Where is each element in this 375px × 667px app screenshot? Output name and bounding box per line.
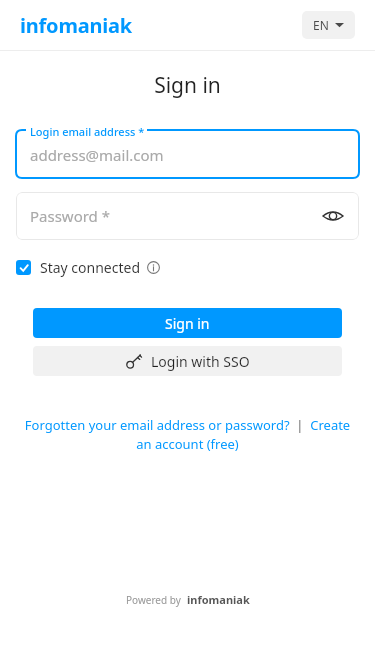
staticText: Powered by <box>126 593 181 607</box>
staticText: Sign in <box>0 71 375 100</box>
button[interactable]: Password * <box>16 192 359 240</box>
button[interactable]: Sign in <box>33 308 342 338</box>
staticText: EN <box>313 17 329 33</box>
button[interactable]: EN <box>302 11 355 39</box>
button[interactable]: Show password <box>315 198 351 234</box>
button[interactable]: Stay connected <box>14 256 162 279</box>
staticText: infomaniak <box>187 592 250 607</box>
staticText: Login with SSO <box>151 352 250 371</box>
button[interactable]: Login with SSO <box>33 346 342 376</box>
staticText: address@mail.com <box>30 145 164 165</box>
button[interactable]: infomaniak <box>20 12 133 39</box>
staticText: Stay connected <box>40 258 141 277</box>
staticText: Forgotten your email address or password… <box>16 416 359 453</box>
staticText: Login email address * <box>30 124 145 139</box>
button[interactable] <box>16 122 359 178</box>
staticText: Password * <box>30 206 111 226</box>
button[interactable]: Forgotten your email address or password… <box>16 416 359 453</box>
staticText: Sign in <box>165 314 210 333</box>
